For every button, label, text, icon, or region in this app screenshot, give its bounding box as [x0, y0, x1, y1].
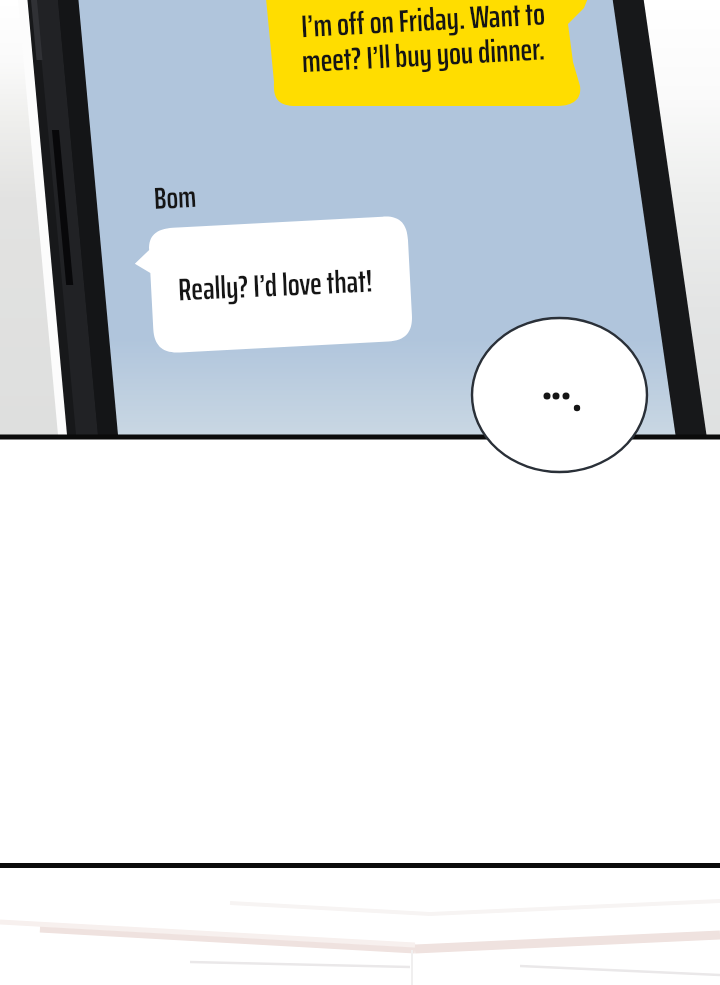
button[interactable]: Webtoon episode page: [0, 0, 720, 985]
